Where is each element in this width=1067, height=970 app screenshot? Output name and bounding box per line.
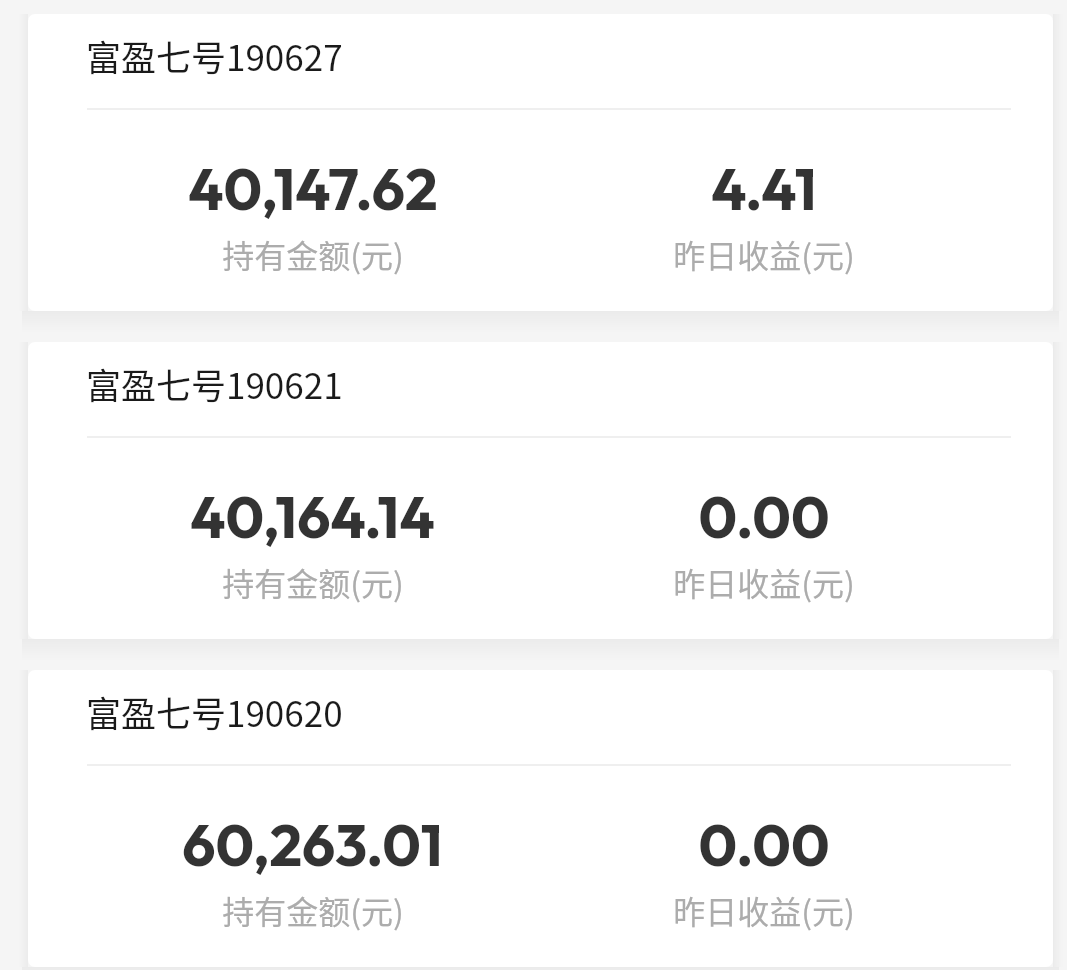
staticText: 持有金额(元) — [222, 231, 404, 277]
staticText: 40,147.62 — [188, 152, 438, 225]
button[interactable]: 富盈七号190627 — [28, 14, 1053, 311]
staticText: 0.00 — [698, 480, 830, 553]
staticText: 昨日收益(元) — [673, 559, 855, 605]
button[interactable]: 富盈七号190620 — [28, 670, 1053, 967]
staticText: 昨日收益(元) — [673, 887, 855, 933]
staticText: 60,263.01 — [182, 808, 443, 881]
staticText: 40,164.14 — [190, 480, 435, 553]
staticText: 4.41 — [711, 152, 817, 225]
staticText: 富盈七号190621 — [86, 358, 343, 409]
staticText: 持有金额(元) — [222, 559, 404, 605]
staticText: 昨日收益(元) — [673, 231, 855, 277]
staticText: 0.00 — [698, 808, 830, 881]
staticText: 富盈七号190627 — [86, 30, 343, 81]
staticText: 持有金额(元) — [222, 887, 404, 933]
button[interactable]: 富盈七号190621 — [28, 342, 1053, 639]
staticText: 富盈七号190620 — [86, 686, 343, 737]
